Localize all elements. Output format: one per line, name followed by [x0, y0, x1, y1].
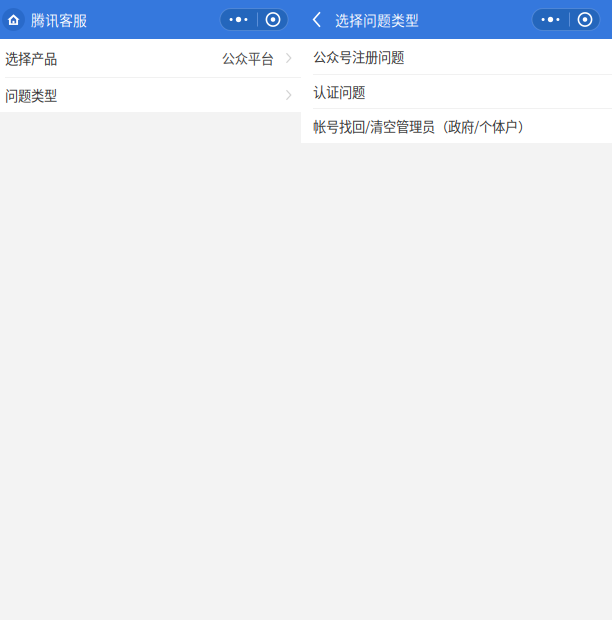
staticText: 选择产品 — [5, 48, 57, 68]
staticText: 公众号注册问题 — [313, 47, 404, 66]
button[interactable]: More — [220, 8, 288, 30]
staticText: 选择问题类型 — [335, 9, 419, 29]
button[interactable]: 帐号找回/清空管理员（政府/个体户） — [301, 109, 612, 143]
staticText: 腾讯客服 — [31, 9, 87, 29]
button[interactable]: 问题类型 — [0, 78, 301, 112]
staticText: 帐号找回/清空管理员（政府/个体户） — [313, 116, 531, 136]
staticText: 认证问题 — [313, 82, 365, 101]
staticText: 公众平台 — [222, 48, 274, 68]
button[interactable]: Back — [308, 7, 326, 32]
staticText: 问题类型 — [5, 85, 57, 105]
button[interactable]: 公众号注册问题 — [301, 39, 612, 74]
button[interactable]: More — [532, 8, 600, 30]
button[interactable]: 认证问题 — [301, 75, 612, 108]
button[interactable]: Home — [1, 7, 26, 32]
button[interactable]: 选择产品 — [0, 39, 301, 77]
